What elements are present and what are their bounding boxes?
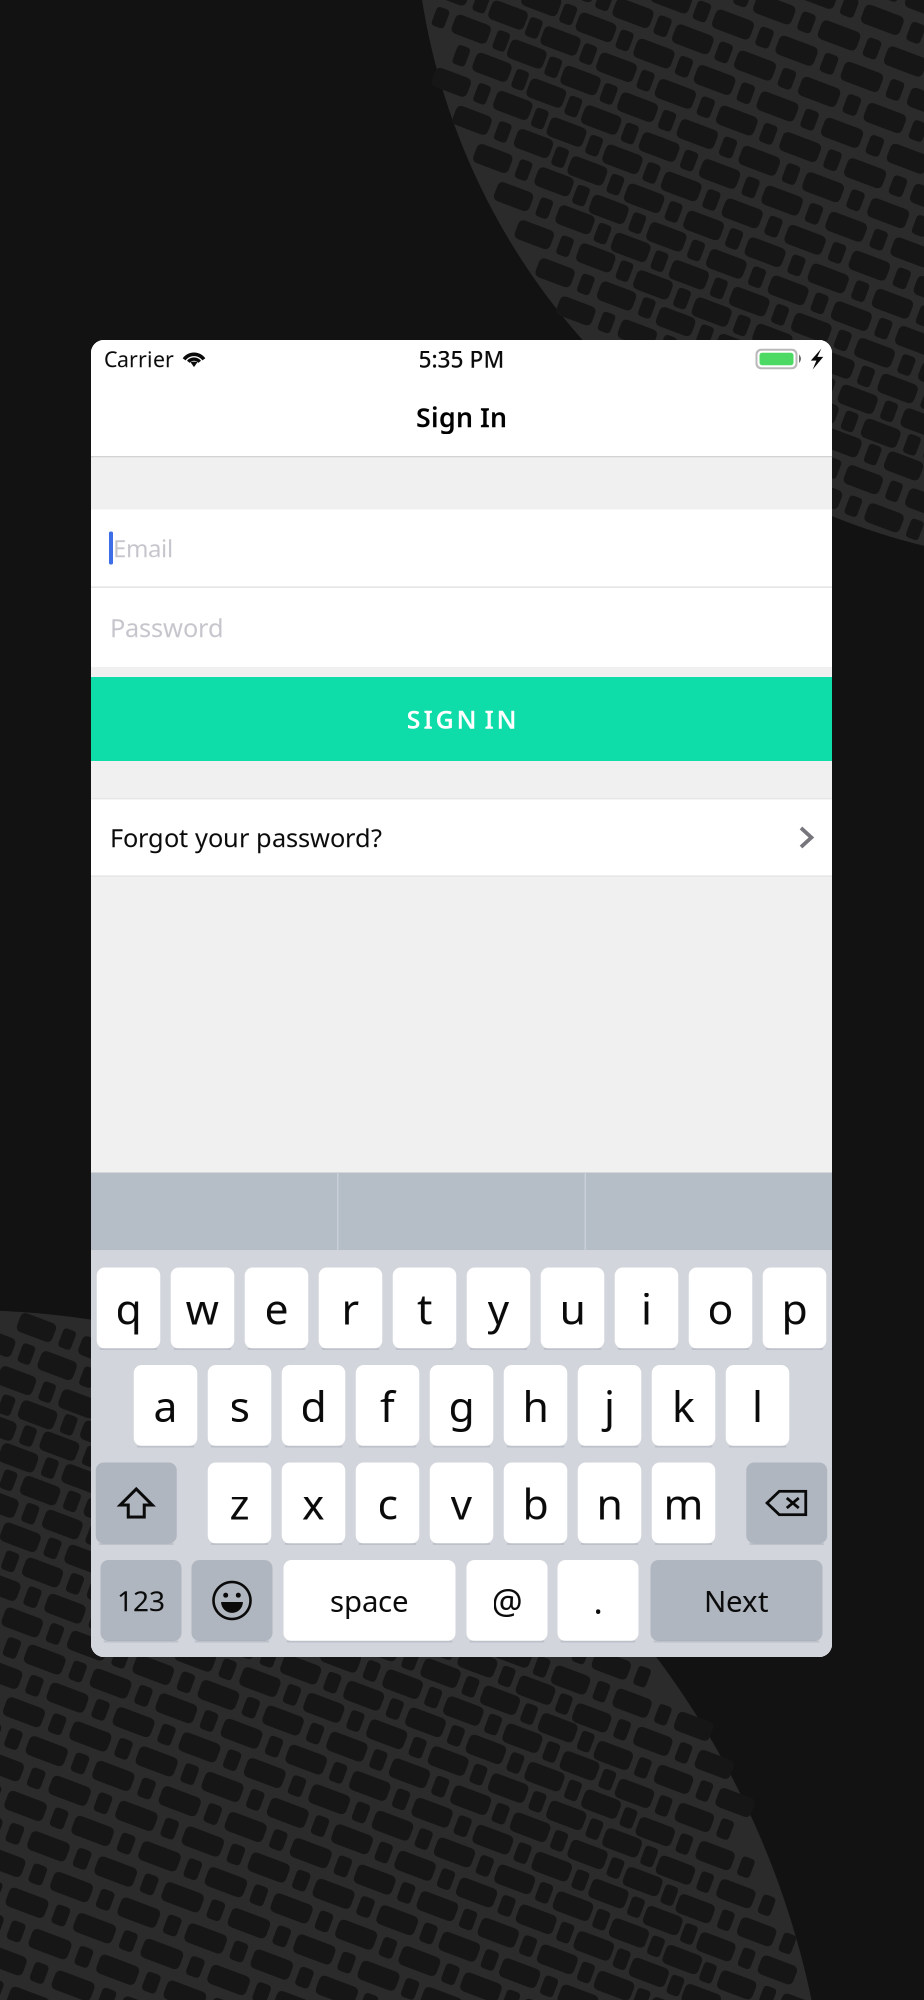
staticText: r (341, 1280, 359, 1336)
staticText: h (522, 1377, 548, 1434)
staticText: k (672, 1377, 695, 1434)
button[interactable]: q (97, 1267, 160, 1348)
staticText: p (781, 1280, 807, 1336)
button[interactable]: Next (650, 1560, 822, 1641)
button[interactable]: h (504, 1365, 567, 1446)
staticText: S I G N I N (406, 702, 516, 736)
staticText: y (487, 1280, 509, 1336)
staticText: x (302, 1475, 325, 1531)
button[interactable]: b (504, 1462, 567, 1543)
button[interactable]: a (134, 1365, 197, 1446)
staticText: u (559, 1280, 585, 1336)
staticText: e (264, 1280, 288, 1336)
button[interactable]: Email (91, 509, 832, 586)
button[interactable]: g (430, 1365, 493, 1446)
staticText: b (522, 1475, 548, 1531)
button[interactable]: i (615, 1267, 678, 1348)
button[interactable]: . (557, 1560, 638, 1641)
button[interactable]: k (652, 1365, 715, 1446)
button[interactable]: Password (91, 588, 832, 667)
button[interactable]: r (319, 1267, 382, 1348)
staticText: @ (491, 1577, 522, 1623)
staticText: n (596, 1475, 622, 1531)
button[interactable]: x (282, 1462, 345, 1543)
staticText: i (641, 1280, 652, 1336)
button[interactable]: Delete (746, 1462, 827, 1543)
staticText: Carrier (104, 345, 174, 373)
button[interactable]: u (541, 1267, 604, 1348)
staticText: d (300, 1377, 326, 1434)
staticText: w (185, 1280, 219, 1336)
button[interactable]: s (208, 1365, 271, 1446)
button[interactable]: j (578, 1365, 641, 1446)
button[interactable]: t (393, 1267, 456, 1348)
button[interactable]: l (726, 1365, 789, 1446)
staticText: l (752, 1377, 763, 1434)
staticText: s (229, 1377, 249, 1434)
staticText: 123 (117, 1582, 165, 1619)
staticText: g (448, 1377, 474, 1434)
staticText: Next (704, 1581, 769, 1620)
button[interactable]: z (208, 1462, 271, 1543)
staticText: z (229, 1475, 249, 1531)
button[interactable]: e (245, 1267, 308, 1348)
button[interactable]: Shift (96, 1462, 177, 1543)
button[interactable]: y (467, 1267, 530, 1348)
staticText: Password (110, 611, 224, 644)
button[interactable]: Emoji (191, 1560, 272, 1641)
staticText: Sign In (416, 399, 507, 435)
staticText: q (115, 1280, 141, 1336)
staticText: Email (113, 532, 173, 564)
staticText: 5:35 PM (418, 344, 504, 374)
button[interactable]: space (283, 1560, 455, 1641)
button[interactable]: f (356, 1365, 419, 1446)
button[interactable]: S I G N I N (91, 677, 832, 761)
staticText: j (604, 1377, 615, 1434)
staticText: a (153, 1377, 177, 1434)
button[interactable]: 123 (100, 1560, 181, 1641)
staticText: Forgot your password? (110, 821, 382, 854)
staticText: f (380, 1377, 395, 1434)
button[interactable]: c (356, 1462, 419, 1543)
button[interactable]: o (689, 1267, 752, 1348)
staticText: o (707, 1280, 733, 1336)
button[interactable]: d (282, 1365, 345, 1446)
staticText: . (593, 1577, 602, 1623)
button[interactable]: Forgot your password? (91, 799, 832, 875)
staticText: t (417, 1280, 432, 1336)
staticText: space (330, 1581, 409, 1620)
button[interactable]: n (578, 1462, 641, 1543)
button[interactable]: v (430, 1462, 493, 1543)
button[interactable]: @ (466, 1560, 547, 1641)
staticText: m (663, 1475, 703, 1531)
staticText: c (377, 1475, 397, 1531)
button[interactable]: m (652, 1462, 715, 1543)
staticText: v (450, 1475, 472, 1531)
button[interactable]: p (763, 1267, 826, 1348)
button[interactable]: w (171, 1267, 234, 1348)
